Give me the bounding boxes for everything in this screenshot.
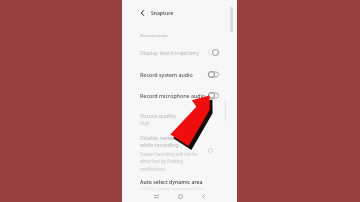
button[interactable]: Home [173,189,187,202]
button[interactable]: Picture quality [122,110,237,128]
button[interactable]: Disable network while recording [122,131,237,171]
staticText: High [140,120,150,126]
staticText: Display touch trajectory [140,49,208,56]
button[interactable]: Display touch trajectory [122,46,237,59]
button[interactable]: Recents [149,189,163,202]
staticText: Record microphone audio [140,92,208,99]
button[interactable]: Record microphone audio [122,89,237,102]
staticText: Record system audio [140,71,208,78]
button[interactable]: Auto select dynamic area [122,176,237,191]
button[interactable]: Back [196,189,210,202]
button[interactable]: Back [136,5,148,21]
staticText: Picture quality [140,112,176,119]
staticText: Use the system recommendation [140,186,206,192]
button[interactable]: Record system audio [122,68,237,81]
staticText: Record screen [140,33,168,39]
staticText: Snapture [151,10,174,17]
staticText: Disable network while recording [140,134,181,148]
staticText: Auto select dynamic area [140,179,203,186]
staticText: Screen recording will not be disturbed b… [140,151,198,172]
